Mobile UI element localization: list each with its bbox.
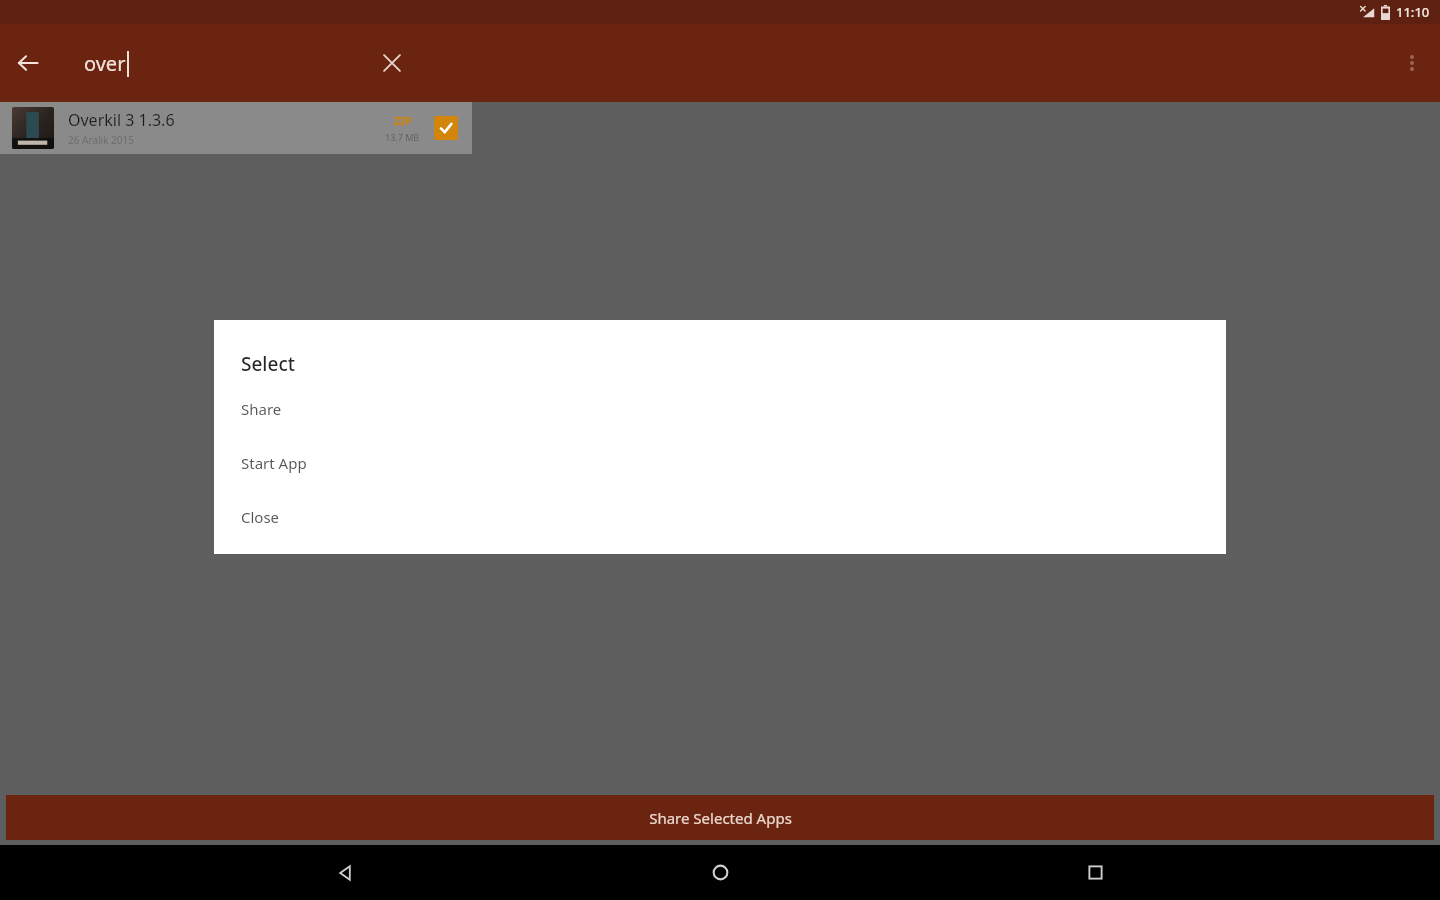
button[interactable]: Home — [690, 845, 750, 900]
button[interactable]: Overkil 3 1.3.6 — [0, 102, 472, 154]
button[interactable]: Start App — [214, 436, 1226, 490]
staticText: 11:10 — [1396, 3, 1430, 21]
staticText: Select — [241, 351, 295, 377]
staticText: Share — [241, 399, 282, 419]
button[interactable]: Back — [0, 35, 56, 91]
button[interactable]: Clear search — [364, 35, 420, 91]
staticText: Start App — [241, 453, 307, 473]
staticText: Close — [241, 507, 280, 527]
button[interactable]: Close — [214, 490, 1226, 544]
staticText: over — [84, 50, 126, 77]
button[interactable]: Recent apps — [1065, 845, 1125, 900]
staticText: 13.7 MB — [385, 131, 420, 143]
button[interactable]: Back — [315, 845, 375, 900]
staticText: 26 Aralık 2015 — [68, 133, 134, 147]
staticText: Overkil 3 1.3.6 — [68, 109, 175, 131]
button[interactable]: Share — [214, 382, 1226, 436]
button[interactable]: Share Selected Apps — [6, 795, 1434, 840]
staticText: Share Selected Apps — [649, 808, 792, 828]
staticText: ZIP — [394, 113, 412, 128]
button[interactable]: Selected — [434, 116, 458, 140]
button[interactable]: More options — [1384, 35, 1440, 91]
